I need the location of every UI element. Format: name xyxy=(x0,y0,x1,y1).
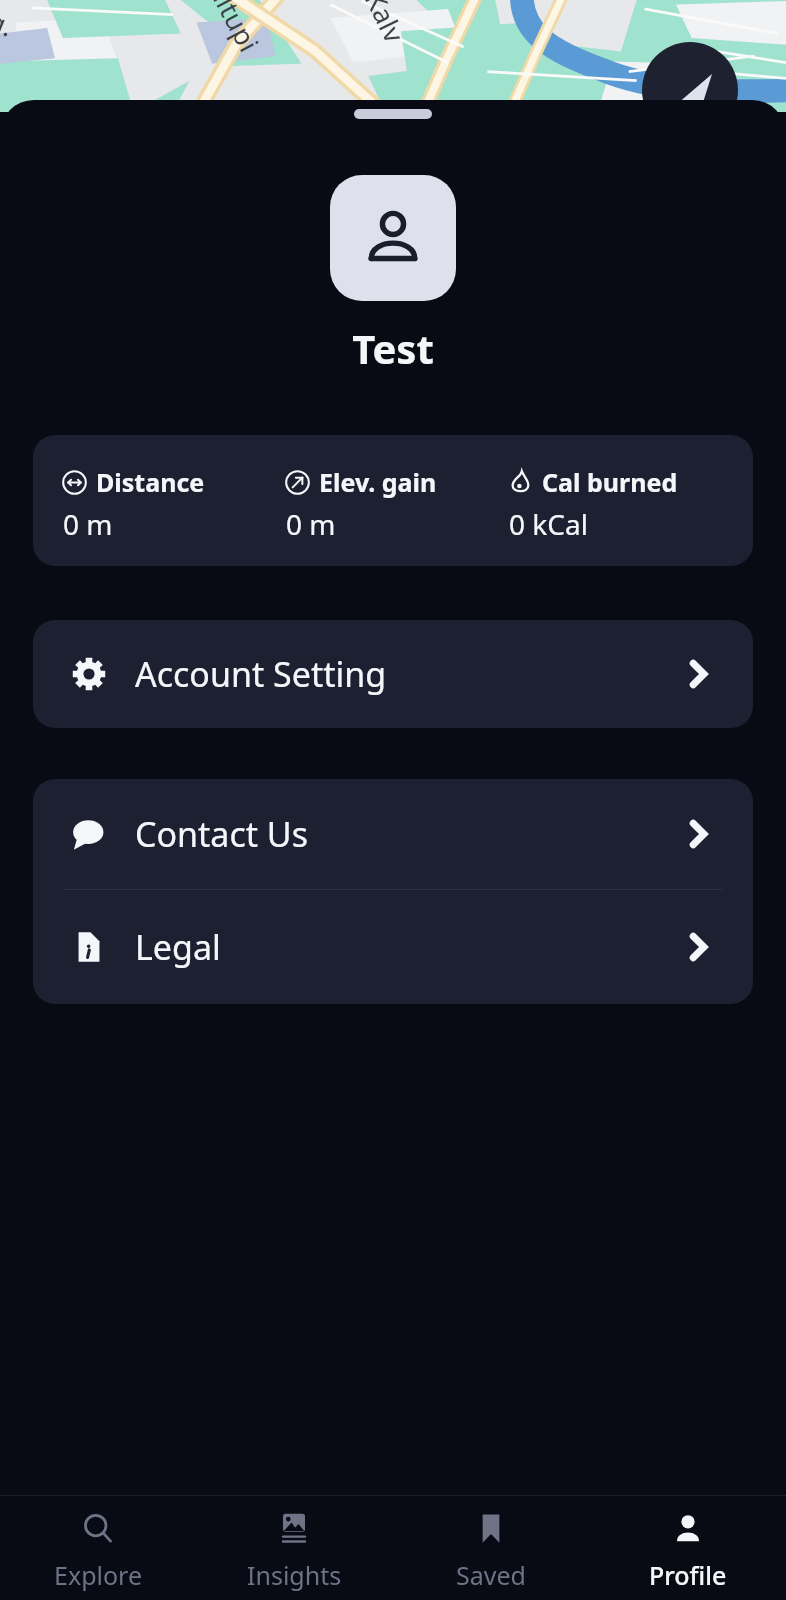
staticText: Contact Us xyxy=(135,811,308,857)
button[interactable]: Account Setting xyxy=(33,620,753,728)
staticText: Legal xyxy=(135,924,221,970)
button[interactable]: Contact Us xyxy=(33,779,753,889)
staticText: Cal burned xyxy=(542,465,678,499)
staticText: 0 m xyxy=(286,505,336,543)
button[interactable]: Insights xyxy=(196,1496,392,1592)
staticText: Elev. gain xyxy=(319,465,437,499)
button[interactable]: Profile xyxy=(589,1496,786,1592)
button[interactable]: Navigate xyxy=(642,42,738,138)
staticText: Explore xyxy=(54,1558,143,1592)
staticText: Test xyxy=(0,321,786,375)
staticText: g. xyxy=(0,1,19,45)
staticText: 0 m xyxy=(63,505,113,543)
button[interactable]: Profile photo xyxy=(330,175,456,301)
staticText: Profile xyxy=(649,1558,727,1592)
staticText: Saved xyxy=(456,1558,526,1592)
button[interactable]: Distance xyxy=(33,435,753,566)
staticText: Account Setting xyxy=(135,651,387,697)
staticText: Kalv xyxy=(357,0,413,49)
button[interactable]: Saved xyxy=(392,1496,589,1592)
staticText: 0 kCal xyxy=(509,505,588,543)
staticText: Distance xyxy=(96,465,205,499)
button[interactable]: Legal xyxy=(33,890,753,1004)
staticText: Insights xyxy=(247,1558,342,1592)
button[interactable]: Explore xyxy=(0,1496,196,1592)
staticText: Baltupi xyxy=(193,0,268,58)
